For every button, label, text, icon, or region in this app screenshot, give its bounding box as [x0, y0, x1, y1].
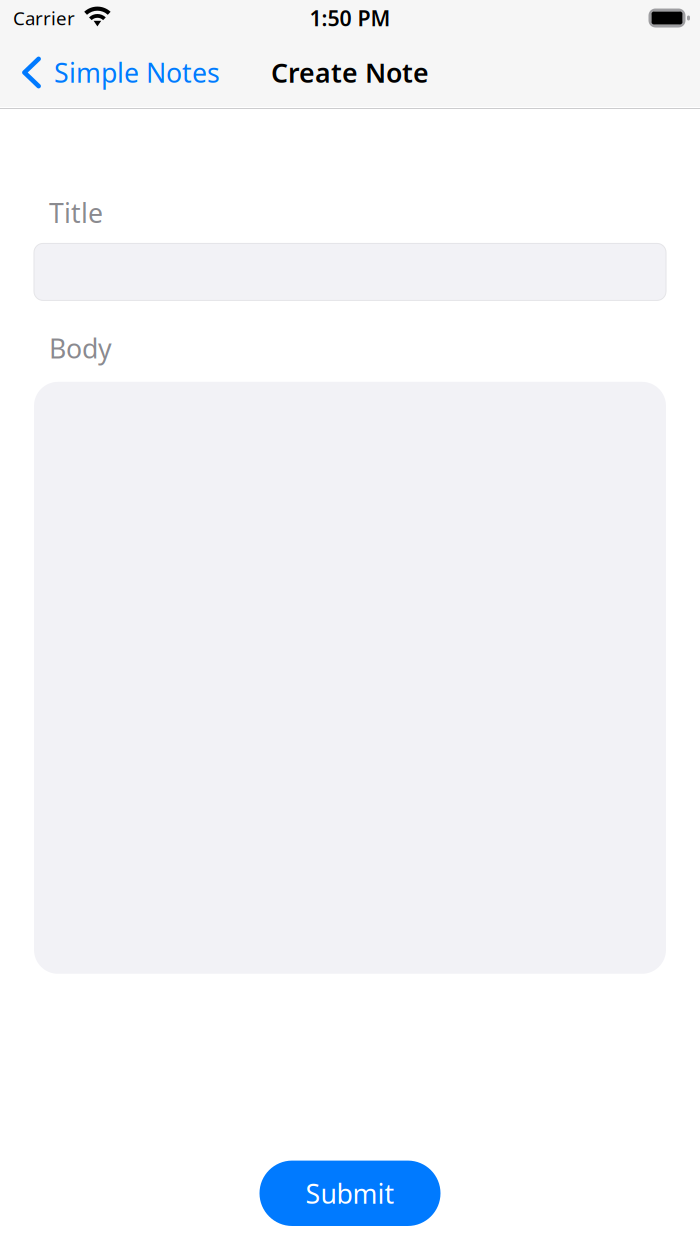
staticText: Carrier — [13, 6, 75, 30]
button[interactable]: Simple Notes — [0, 45, 232, 100]
staticText: Simple Notes — [54, 55, 220, 90]
button[interactable]: Submit — [259, 1161, 440, 1226]
staticText: 1:50 PM — [309, 4, 390, 32]
staticText: Submit — [305, 1176, 394, 1211]
staticText: Title — [49, 195, 103, 230]
staticText: Body — [49, 330, 112, 366]
staticText: Create Note — [271, 55, 429, 90]
